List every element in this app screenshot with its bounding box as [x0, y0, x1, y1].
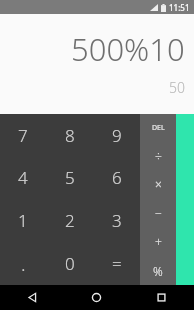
- staticText: =: [112, 252, 122, 275]
- staticText: 3: [112, 209, 122, 232]
- staticText: .: [21, 251, 26, 277]
- button[interactable]: Recent apps: [129, 285, 194, 310]
- staticText: 50: [169, 78, 185, 97]
- button[interactable]: Delete: [140, 114, 176, 142]
- staticText: ÷: [155, 148, 162, 164]
- button[interactable]: 2: [46, 199, 93, 242]
- button[interactable]: .: [0, 242, 46, 285]
- staticText: 1: [18, 209, 28, 232]
- staticText: 500%10: [71, 28, 185, 70]
- button[interactable]: Multiply: [140, 170, 176, 198]
- button[interactable]: 4: [0, 156, 46, 199]
- staticText: ×: [155, 176, 162, 192]
- button[interactable]: 0: [46, 242, 93, 285]
- button[interactable]: 7: [0, 114, 46, 156]
- staticText: 4: [18, 166, 28, 189]
- staticText: %: [153, 263, 163, 279]
- staticText: 11:51: [169, 2, 190, 13]
- staticText: −: [155, 205, 162, 221]
- staticText: 7: [18, 124, 28, 147]
- button[interactable]: Home: [64, 285, 129, 310]
- button[interactable]: Add: [140, 227, 176, 256]
- button[interactable]: 3: [93, 199, 140, 242]
- button[interactable]: 8: [46, 114, 93, 156]
- button[interactable]: Percent: [140, 256, 176, 285]
- button[interactable]: Subtract: [140, 198, 176, 227]
- staticText: DEL: [152, 123, 165, 133]
- button[interactable]: 9: [93, 114, 140, 156]
- button[interactable]: 6: [93, 156, 140, 199]
- staticText: 9: [112, 124, 122, 147]
- staticText: +: [155, 234, 162, 250]
- staticText: 8: [65, 124, 75, 147]
- button[interactable]: Divide: [140, 142, 176, 170]
- staticText: 2: [65, 209, 75, 232]
- button[interactable]: 5: [46, 156, 93, 199]
- button[interactable]: Back: [0, 285, 64, 310]
- staticText: 6: [112, 166, 122, 189]
- button[interactable]: =: [93, 242, 140, 285]
- button[interactable]: 1: [0, 199, 46, 242]
- staticText: 0: [65, 252, 75, 275]
- staticText: 5: [65, 166, 75, 189]
